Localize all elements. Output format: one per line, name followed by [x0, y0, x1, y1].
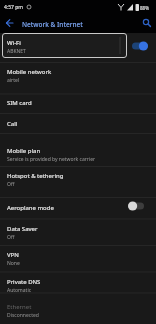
staticText: Off [7, 181, 15, 188]
staticText: 4:57 pm [4, 4, 23, 11]
button[interactable]: Private DNS [0, 278, 156, 294]
staticText: Disconnected [7, 312, 39, 319]
button[interactable]: Hotspot & tethering [0, 172, 156, 188]
staticText: Mobile plan [7, 147, 41, 155]
staticText: Service is provided by network carrier [7, 156, 96, 163]
button[interactable]: VPN [0, 251, 156, 267]
button[interactable] [129, 40, 149, 52]
button[interactable]: SIM card [0, 99, 156, 107]
staticText: airtel [7, 77, 20, 84]
button[interactable]: Ethernet [0, 303, 156, 319]
staticText: Private DNS [7, 278, 41, 286]
staticText: SIM card [7, 99, 32, 107]
staticText: VPN [7, 251, 19, 259]
staticText: Hotspot & tethering [7, 172, 64, 180]
button[interactable]: Mobile plan [0, 147, 156, 163]
staticText: None [7, 260, 20, 267]
button[interactable] [137, 14, 156, 33]
staticText: Mobile network [7, 68, 52, 76]
button[interactable] [0, 14, 20, 33]
button[interactable] [125, 200, 145, 212]
staticText: Data Saver [7, 225, 38, 233]
staticText: Wi-Fi [7, 39, 21, 47]
staticText: 88% [140, 5, 149, 11]
button[interactable]: Call [0, 120, 156, 128]
staticText: Aeroplane mode [7, 204, 54, 212]
button[interactable]: Aeroplane mode [0, 204, 156, 212]
staticText: Network & Internet [22, 20, 83, 29]
button[interactable]: Data Saver [0, 225, 156, 241]
staticText: Ethernet [7, 303, 32, 311]
staticText: ABKNET [7, 48, 26, 55]
staticText: Automatic [7, 287, 32, 294]
staticText: Call [7, 120, 18, 128]
staticText: Off [7, 234, 15, 241]
button[interactable]: Wi-Fi [2, 33, 127, 58]
button[interactable]: Mobile network [0, 68, 156, 84]
